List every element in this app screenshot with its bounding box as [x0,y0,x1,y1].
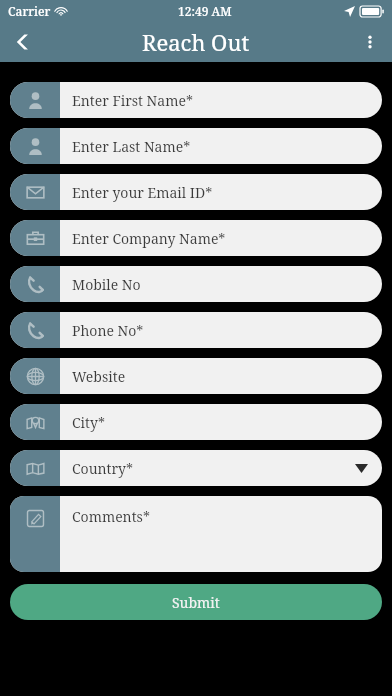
button[interactable]: Back [0,22,48,62]
staticText: Comments* [72,507,150,526]
staticText: Submit [172,593,220,612]
staticText: Carrier [8,3,51,19]
button[interactable]: Enter Last Name* [10,128,382,164]
staticText: Phone No* [72,321,144,340]
staticText: Enter Company Name* [72,229,226,248]
button[interactable]: Enter Company Name* [10,220,382,256]
staticText: Enter your Email ID* [72,183,213,202]
button[interactable]: Enter First Name* [10,82,382,118]
button[interactable]: Website [10,358,382,394]
staticText: Enter First Name* [72,91,193,110]
button[interactable]: Phone No* [10,312,382,348]
button[interactable]: Enter your Email ID* [10,174,382,210]
staticText: Enter Last Name* [72,137,191,156]
button[interactable]: More options [348,22,392,62]
button[interactable]: Comments* [10,496,382,572]
staticText: Website [72,367,126,386]
button[interactable]: Submit [10,584,382,620]
button[interactable]: Mobile No [10,266,382,302]
staticText: Mobile No [72,275,141,294]
button[interactable]: Country* [10,450,382,486]
staticText: Country* [72,459,134,478]
staticText: Reach Out [142,27,250,57]
button[interactable]: City* [10,404,382,440]
staticText: City* [72,413,105,432]
staticText: 12:49 AM [178,3,232,19]
